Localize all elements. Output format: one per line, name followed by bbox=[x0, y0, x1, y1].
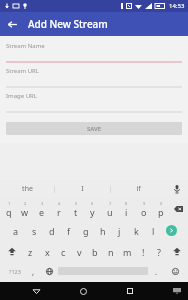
staticText: h bbox=[100, 225, 106, 237]
button[interactable]: 9 bbox=[135, 198, 152, 220]
staticText: the bbox=[22, 184, 33, 194]
button[interactable]: 4 bbox=[50, 198, 67, 220]
staticText: z bbox=[28, 246, 33, 258]
button[interactable]: b bbox=[87, 241, 103, 262]
staticText: 5 bbox=[75, 201, 78, 206]
staticText: I bbox=[81, 184, 84, 194]
staticText: e bbox=[39, 206, 45, 218]
staticText: Stream Name bbox=[6, 42, 45, 50]
button[interactable]: 1 bbox=[1, 198, 17, 220]
staticText: , bbox=[32, 266, 35, 277]
staticText: Stream URL bbox=[6, 67, 40, 75]
button[interactable]: c bbox=[55, 241, 71, 262]
button[interactable]: the bbox=[0, 180, 54, 198]
button[interactable]: Recent apps bbox=[118, 282, 142, 300]
button[interactable]: Change language bbox=[41, 262, 58, 280]
staticText: j bbox=[118, 225, 121, 237]
staticText: w bbox=[21, 206, 29, 218]
staticText: x bbox=[45, 246, 50, 258]
staticText: SAVE bbox=[87, 125, 102, 133]
staticText: 8 bbox=[125, 201, 128, 206]
button[interactable]: g bbox=[77, 220, 94, 241]
staticText: ? bbox=[157, 246, 161, 258]
staticText: v bbox=[77, 246, 82, 258]
button[interactable]: ? bbox=[151, 241, 167, 262]
staticText: 1 bbox=[8, 201, 11, 206]
staticText: a bbox=[13, 225, 19, 237]
staticText: f bbox=[67, 225, 71, 237]
button[interactable]: j bbox=[111, 220, 128, 241]
staticText: n bbox=[108, 246, 114, 258]
staticText: t bbox=[74, 206, 78, 218]
button[interactable]: Emoji bbox=[165, 262, 185, 280]
staticText: 0 bbox=[160, 201, 163, 206]
button[interactable]: d bbox=[43, 220, 60, 241]
staticText: 2 bbox=[24, 201, 27, 206]
staticText: Image URL bbox=[6, 92, 37, 100]
staticText: 6 bbox=[91, 201, 94, 206]
button[interactable]: 6 bbox=[84, 198, 101, 220]
staticText: 9 bbox=[143, 201, 146, 206]
button[interactable]: z bbox=[22, 241, 39, 262]
button[interactable]: 7 bbox=[101, 198, 118, 220]
staticText: b bbox=[92, 246, 98, 258]
button[interactable]: Shift bbox=[167, 241, 186, 262]
button[interactable]: Shift bbox=[2, 241, 22, 262]
button[interactable]: f bbox=[60, 220, 77, 241]
button[interactable]: Backspace bbox=[169, 198, 187, 220]
button[interactable]: Voice input bbox=[166, 180, 188, 198]
button[interactable]: n bbox=[103, 241, 119, 262]
button[interactable]: SAVE bbox=[6, 122, 182, 135]
staticText: c bbox=[61, 246, 66, 258]
button[interactable]: a bbox=[7, 220, 25, 241]
staticText: m bbox=[123, 246, 132, 258]
staticText: 4 bbox=[58, 201, 61, 206]
button[interactable]: if bbox=[111, 180, 166, 198]
button[interactable]: I bbox=[55, 180, 110, 198]
staticText: ! bbox=[142, 246, 145, 258]
button[interactable]: ?123 bbox=[3, 262, 26, 280]
staticText: g bbox=[83, 225, 89, 237]
button[interactable]: Home bbox=[71, 282, 95, 300]
staticText: Add New Stream bbox=[28, 17, 108, 31]
button[interactable]: h bbox=[94, 220, 111, 241]
button[interactable]: 2 bbox=[17, 198, 33, 220]
staticText: s bbox=[32, 225, 37, 237]
button[interactable]: k bbox=[128, 220, 145, 241]
button[interactable]: s bbox=[25, 220, 43, 241]
staticText: 7 bbox=[109, 201, 112, 206]
button[interactable]: . bbox=[148, 262, 165, 280]
button[interactable]: ! bbox=[135, 241, 151, 262]
staticText: p bbox=[158, 206, 164, 218]
button[interactable]: l bbox=[145, 220, 162, 241]
button[interactable]: 3 bbox=[33, 198, 50, 220]
staticText: k bbox=[134, 225, 139, 237]
staticText: 3 bbox=[41, 201, 44, 206]
button[interactable]: Hide keyboard bbox=[168, 282, 186, 300]
button[interactable]: v bbox=[71, 241, 87, 262]
staticText: u bbox=[107, 206, 113, 218]
staticText: o bbox=[141, 206, 147, 218]
button[interactable]: Back bbox=[24, 282, 48, 300]
staticText: if bbox=[136, 184, 141, 194]
staticText: q bbox=[6, 206, 12, 218]
button[interactable]: Back bbox=[0, 12, 24, 36]
button[interactable]: 5 bbox=[67, 198, 84, 220]
button[interactable]: x bbox=[39, 241, 55, 262]
staticText: d bbox=[49, 225, 55, 237]
staticText: 14:53 bbox=[169, 2, 185, 10]
staticText: . bbox=[155, 266, 158, 277]
button[interactable]: , bbox=[26, 262, 41, 280]
staticText: ?123 bbox=[9, 268, 21, 275]
staticText: r bbox=[57, 206, 61, 218]
button[interactable]: Enter bbox=[162, 220, 181, 241]
button[interactable]: m bbox=[119, 241, 135, 262]
staticText: y bbox=[90, 206, 95, 218]
button[interactable]: 0 bbox=[152, 198, 169, 220]
staticText: l bbox=[152, 225, 155, 237]
staticText: i bbox=[125, 206, 128, 218]
button[interactable]: 8 bbox=[118, 198, 135, 220]
